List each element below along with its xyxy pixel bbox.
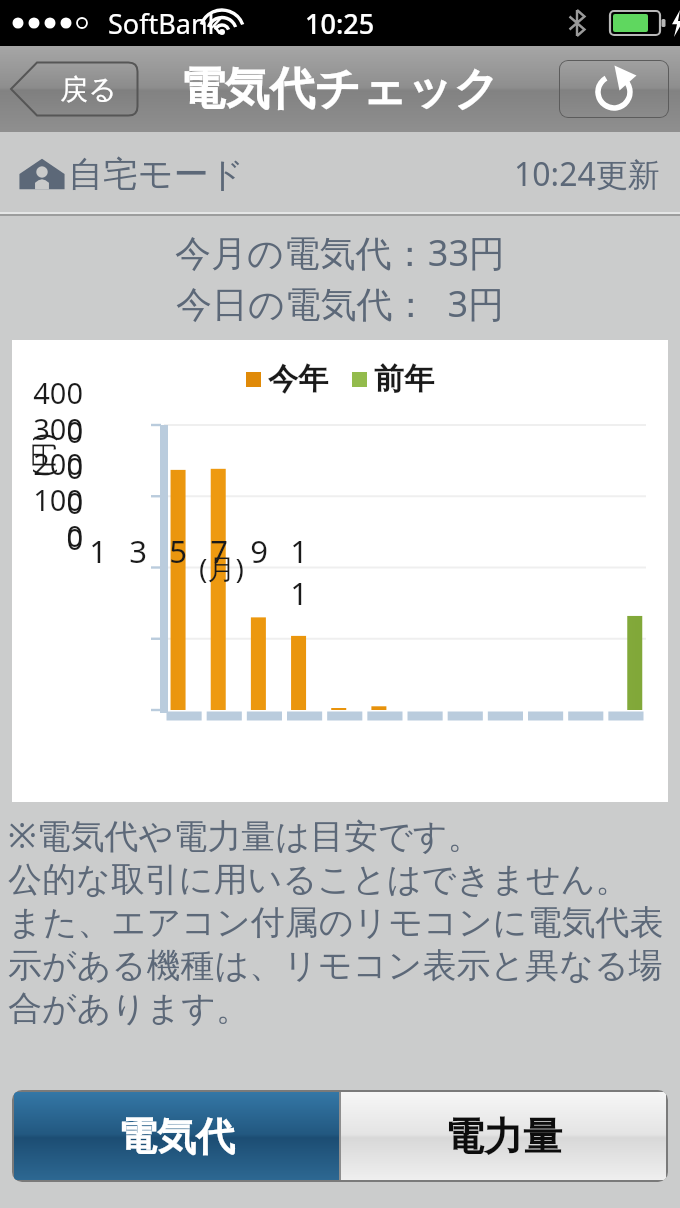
staticText: ※電気代や電力量は目安です。: [8, 812, 482, 858]
staticText: 今日の電気代： 3円: [176, 279, 505, 328]
staticText: 今月の電気代：33円: [175, 228, 506, 277]
staticText: また、エアコン付属のリモコンに電気代表: [8, 901, 664, 944]
staticText: 10:25: [305, 5, 375, 42]
staticText: 電気代: [118, 1112, 235, 1161]
button[interactable]: 電力量: [341, 1092, 666, 1180]
staticText: 10:24更新: [514, 152, 660, 196]
staticText: 3000: [30, 409, 83, 487]
button[interactable]: 電気代: [14, 1092, 339, 1180]
staticText: 0: [66, 516, 83, 555]
staticText: 公的な取引に用いることはできません。: [8, 858, 630, 901]
button[interactable]: 更新: [559, 60, 669, 118]
staticText: (円): [23, 432, 60, 476]
staticText: 合があります。: [8, 987, 250, 1030]
staticText: 自宅モード: [68, 152, 245, 196]
staticText: 4000: [30, 373, 83, 451]
staticText: 7: [210, 530, 228, 572]
staticText: 戻る: [60, 72, 117, 107]
staticText: 11: [284, 530, 314, 614]
staticText: 9: [250, 530, 268, 572]
staticText: 2000: [30, 444, 83, 522]
staticText: SoftBank: [108, 5, 222, 42]
staticText: 3: [129, 530, 147, 572]
staticText: 前年: [374, 360, 434, 398]
staticText: (月): [199, 549, 244, 587]
staticText: 示がある機種は、リモコン表示と異なる場: [8, 944, 663, 987]
staticText: 1: [89, 530, 107, 572]
staticText: 1000: [30, 480, 83, 558]
staticText: 5: [169, 530, 187, 572]
staticText: 電力量: [445, 1112, 562, 1161]
staticText: 今年: [268, 360, 328, 398]
staticText: 電気代チェック: [180, 61, 500, 118]
button[interactable]: 戻る: [9, 61, 139, 117]
